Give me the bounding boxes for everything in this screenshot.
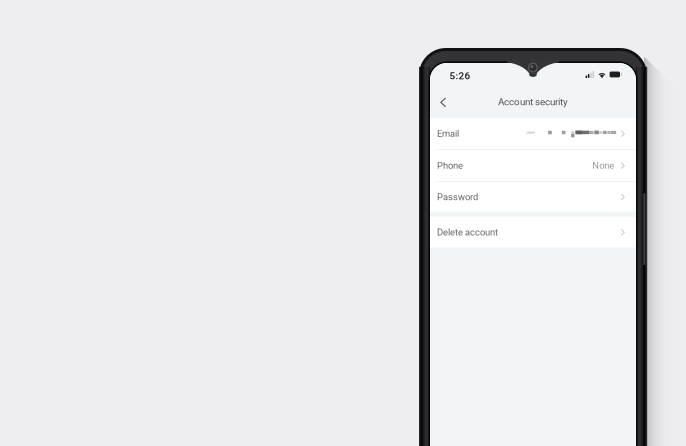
staticText: None (592, 160, 614, 171)
staticText: Delete account (437, 227, 498, 238)
button[interactable]: Back (430, 87, 456, 117)
staticText: 5:26 (450, 70, 471, 82)
staticText: Password (437, 191, 478, 202)
button[interactable]: Delete account (430, 217, 636, 248)
staticText: Account security (498, 96, 568, 108)
staticText: Email (437, 128, 459, 139)
button[interactable]: Email (430, 118, 636, 149)
staticText: Phone (437, 160, 463, 171)
button[interactable]: Phone (430, 150, 636, 181)
button[interactable]: Password (430, 182, 636, 212)
